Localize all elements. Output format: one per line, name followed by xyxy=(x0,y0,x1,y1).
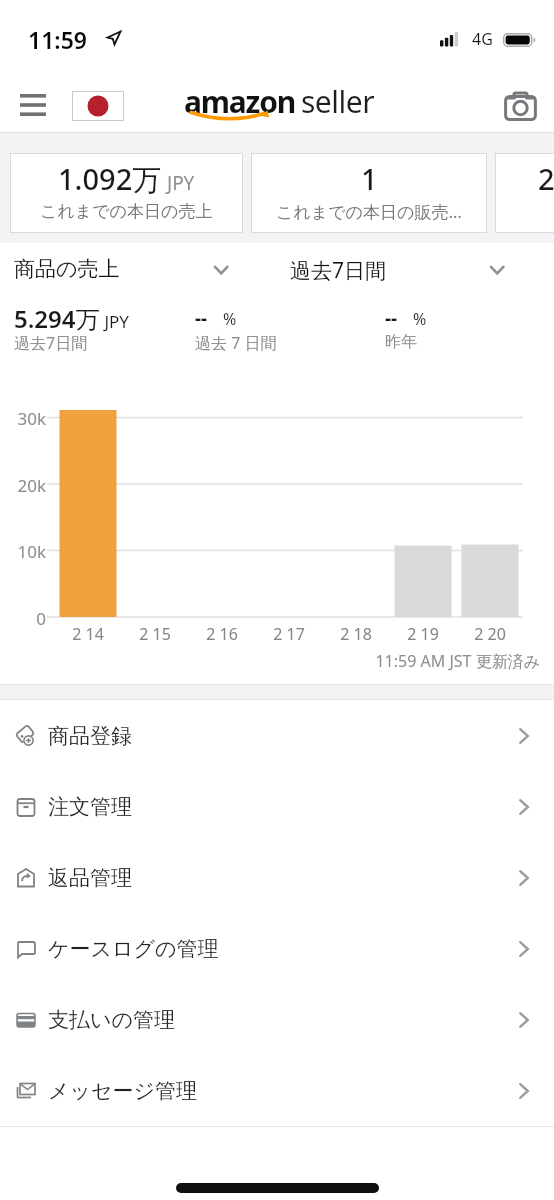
staticText: 2 19 xyxy=(393,623,453,645)
staticText: 商品の売上 xyxy=(14,256,120,282)
staticText: 注文管理 xyxy=(48,794,132,820)
staticText: これまでの本日の販売… xyxy=(276,200,462,223)
button[interactable]: 1 xyxy=(251,153,487,233)
staticText: 支払いの管理 xyxy=(48,1007,175,1033)
button[interactable]: メッセージ管理 xyxy=(0,1055,554,1126)
staticText: 2 16 xyxy=(192,623,252,645)
button[interactable]: 過去7日間 xyxy=(277,250,554,292)
staticText: 2 17 xyxy=(259,623,319,645)
button[interactable]: 1.092万 xyxy=(10,153,243,233)
button[interactable] xyxy=(72,91,124,121)
button[interactable] xyxy=(20,94,47,117)
staticText: 11:59 AM JST 更新済み xyxy=(240,650,540,672)
staticText: 返品管理 xyxy=(48,865,132,891)
button[interactable]: 返品管理 xyxy=(0,842,554,913)
button[interactable]: 商品の売上 xyxy=(0,250,277,292)
staticText: % xyxy=(413,308,427,330)
staticText: 2 xyxy=(538,159,554,198)
staticText: 2 15 xyxy=(125,623,185,645)
staticText: ケースログの管理 xyxy=(48,936,219,962)
staticText: % xyxy=(223,308,237,330)
staticText: 30k xyxy=(8,407,46,430)
button[interactable] xyxy=(504,90,538,122)
staticText: メッセージ管理 xyxy=(48,1078,197,1104)
button[interactable]: 支払いの管理 xyxy=(0,984,554,1055)
button[interactable]: 注文管理 xyxy=(0,771,554,842)
button[interactable]: 商品登録 xyxy=(0,700,554,771)
staticText: 1.092万 xyxy=(58,159,162,199)
staticText: 0 xyxy=(8,607,46,630)
staticText: amazon xyxy=(184,81,296,122)
staticText: seller xyxy=(301,81,375,122)
staticText: 過去 7 日間 xyxy=(195,332,277,354)
staticText: 10k xyxy=(8,540,46,563)
staticText: 4G xyxy=(472,28,493,50)
staticText: 商品登録 xyxy=(48,723,132,749)
staticText: -- xyxy=(195,305,208,331)
staticText: -- xyxy=(385,305,398,331)
staticText: JPY xyxy=(100,310,129,333)
staticText: JPY xyxy=(162,170,195,196)
button[interactable]: ケースログの管理 xyxy=(0,913,554,984)
staticText: これまでの本日の売上 xyxy=(40,201,213,222)
staticText: 1 xyxy=(361,159,378,198)
staticText: 20k xyxy=(8,474,46,497)
staticText: 5.294万 xyxy=(14,302,100,335)
staticText: 11:59 xyxy=(28,24,87,55)
staticText: 過去7日間 xyxy=(290,256,387,285)
staticText: 2 18 xyxy=(326,623,386,645)
staticText: 過去7日間 xyxy=(14,332,88,354)
staticText: 2 14 xyxy=(58,623,118,645)
staticText: 2 20 xyxy=(460,623,520,645)
staticText: 昨年 xyxy=(385,332,417,352)
